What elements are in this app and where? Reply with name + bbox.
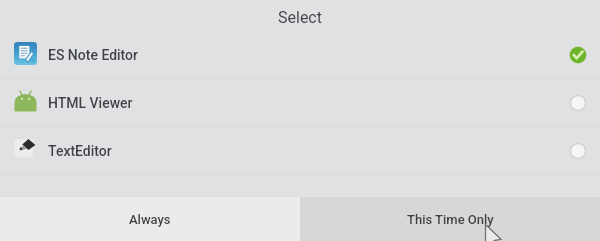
staticText: Select (278, 8, 322, 27)
button[interactable]: This Time Only (300, 197, 600, 241)
other: Selected (569, 46, 587, 64)
staticText: TextEditor (48, 143, 112, 159)
staticText: ES Note Editor (48, 47, 139, 63)
button[interactable]: TextEditor (0, 127, 600, 174)
staticText: Always (129, 212, 171, 227)
staticText: This Time Only (407, 212, 494, 227)
staticText: HTML Viewer (48, 95, 133, 111)
other: Not selected (569, 94, 587, 112)
button[interactable]: ES Note Editor (0, 31, 600, 78)
button[interactable]: HTML Viewer (0, 79, 600, 126)
other: Not selected (569, 142, 587, 160)
button[interactable]: Always (0, 197, 300, 241)
